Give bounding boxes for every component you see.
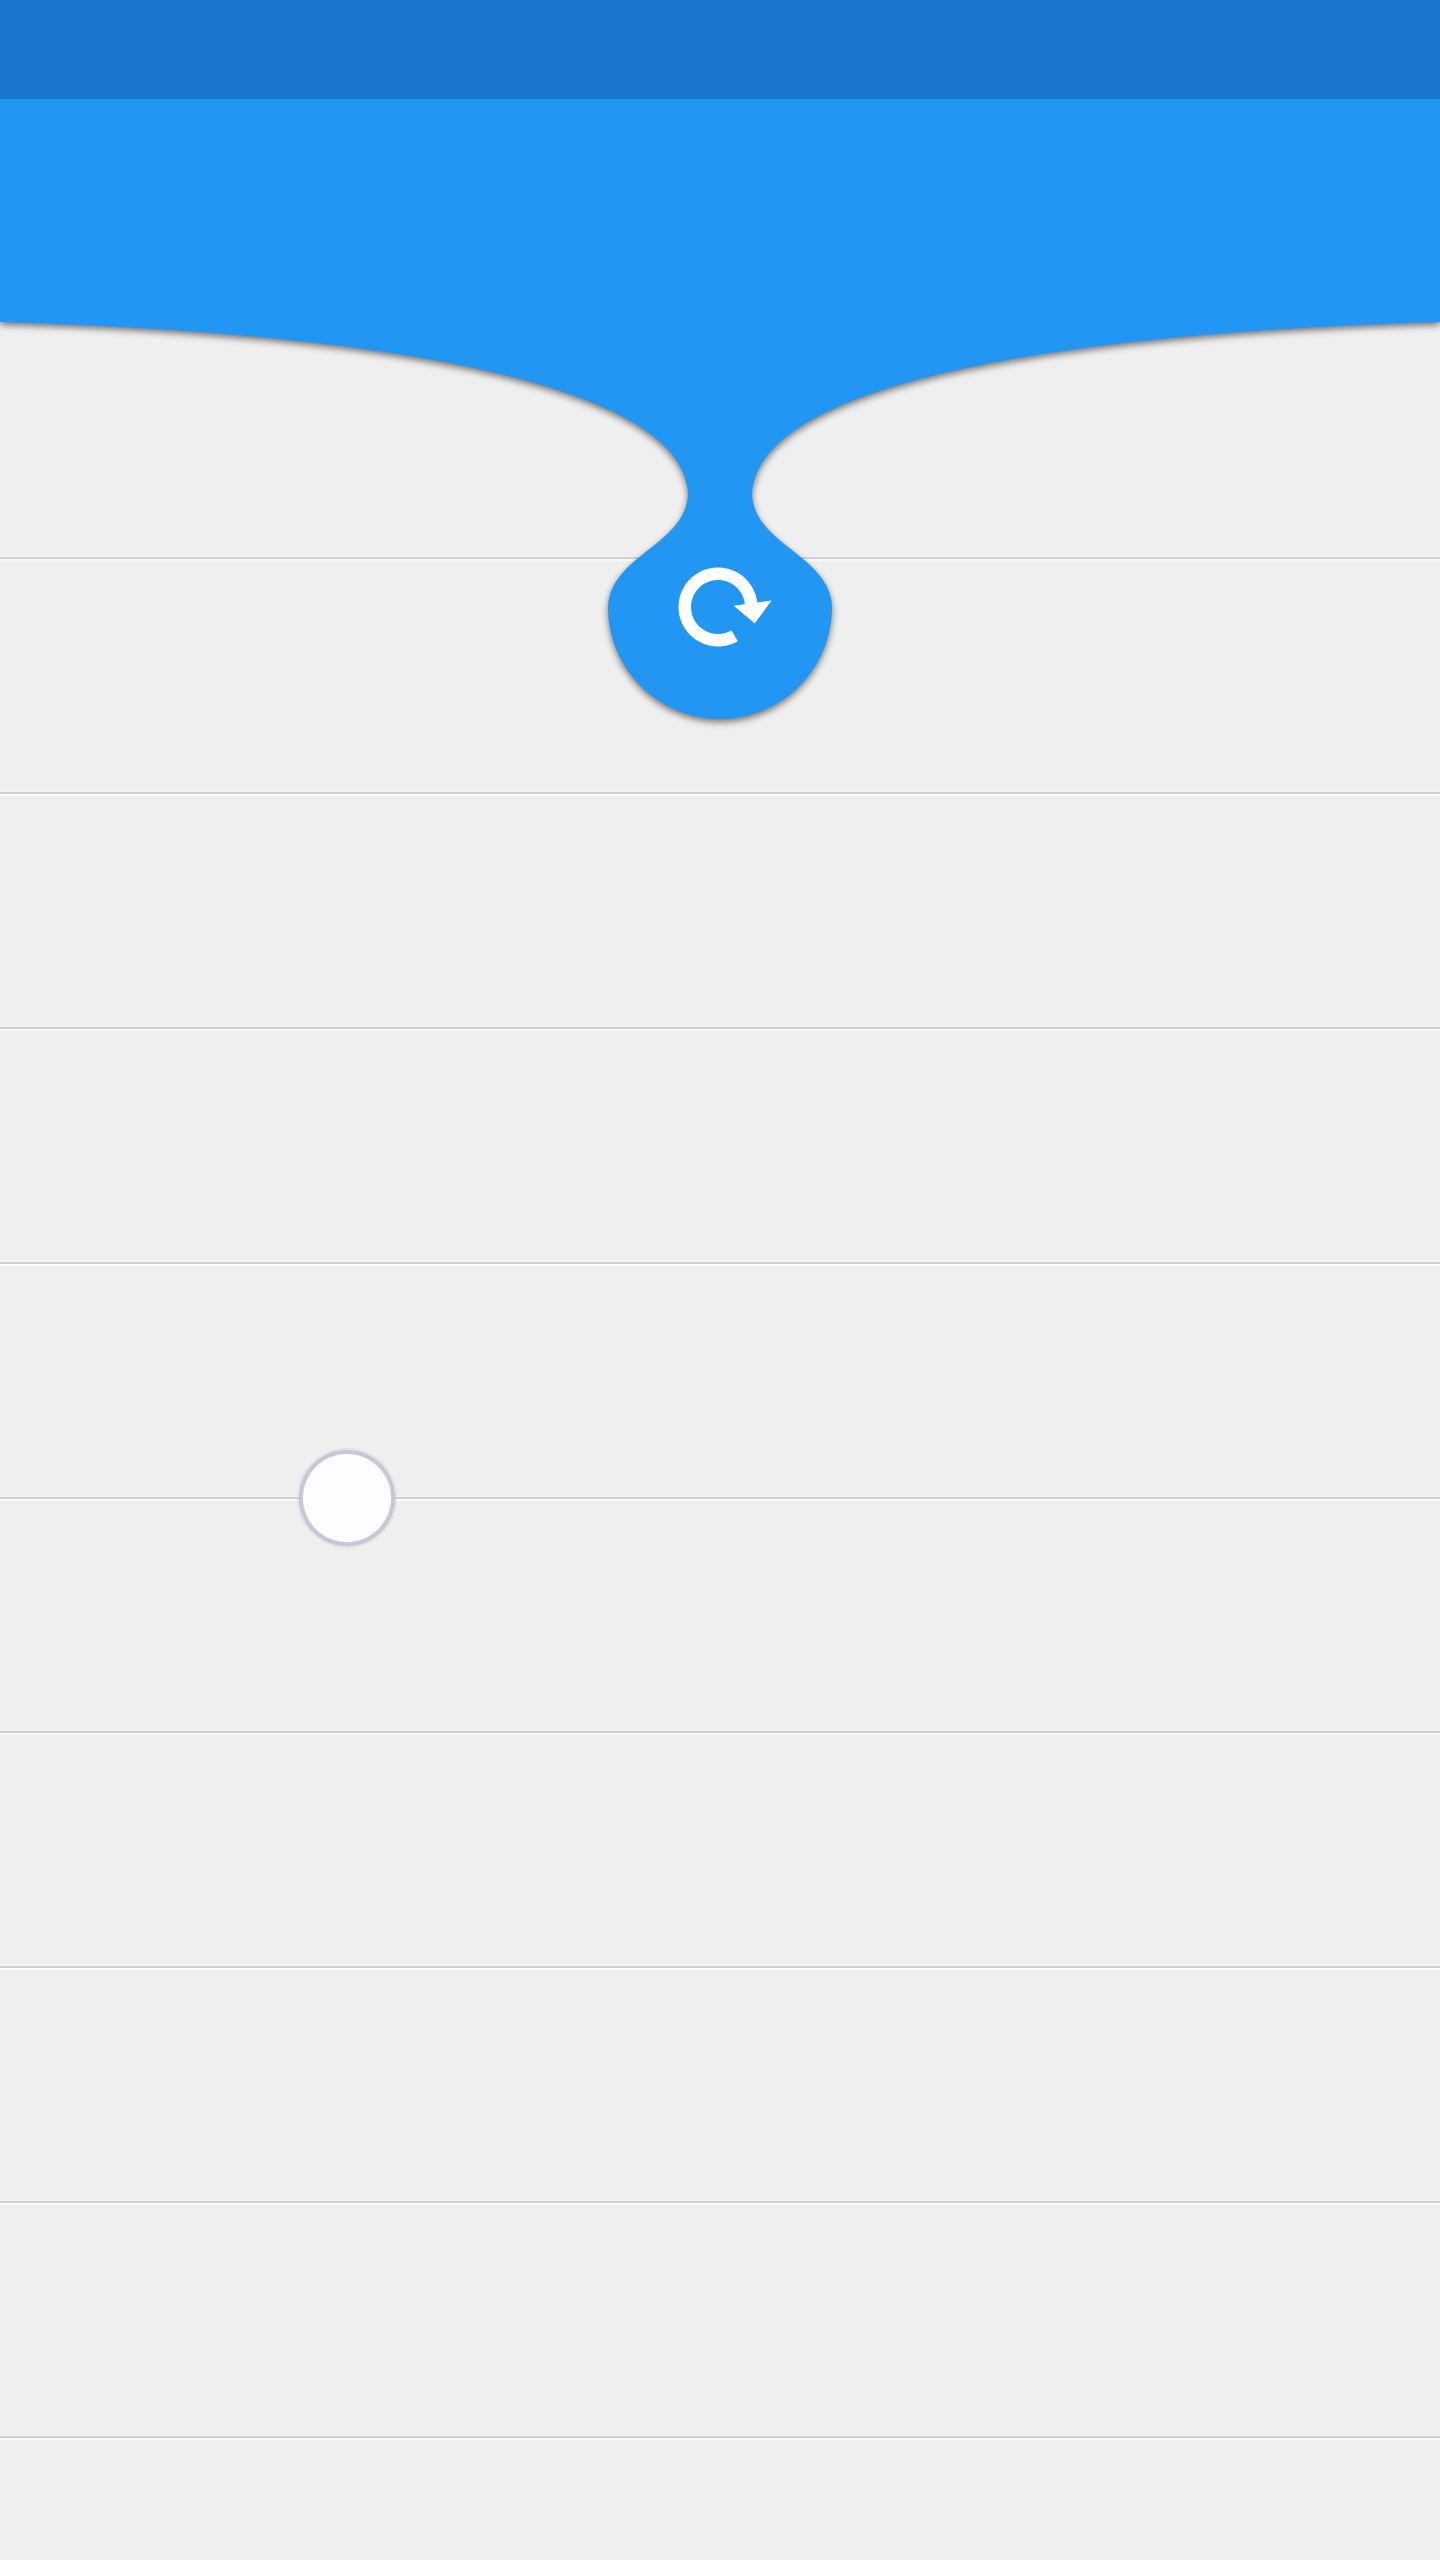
button[interactable] — [0, 1735, 1440, 1970]
button[interactable] — [0, 1031, 1440, 1266]
button[interactable] — [0, 0, 1440, 561]
button[interactable] — [0, 1970, 1440, 2205]
button[interactable] — [0, 796, 1440, 1031]
button[interactable] — [0, 2205, 1440, 2440]
button[interactable] — [0, 1501, 1440, 1735]
button[interactable] — [0, 561, 1440, 796]
button[interactable] — [0, 1266, 1440, 1501]
